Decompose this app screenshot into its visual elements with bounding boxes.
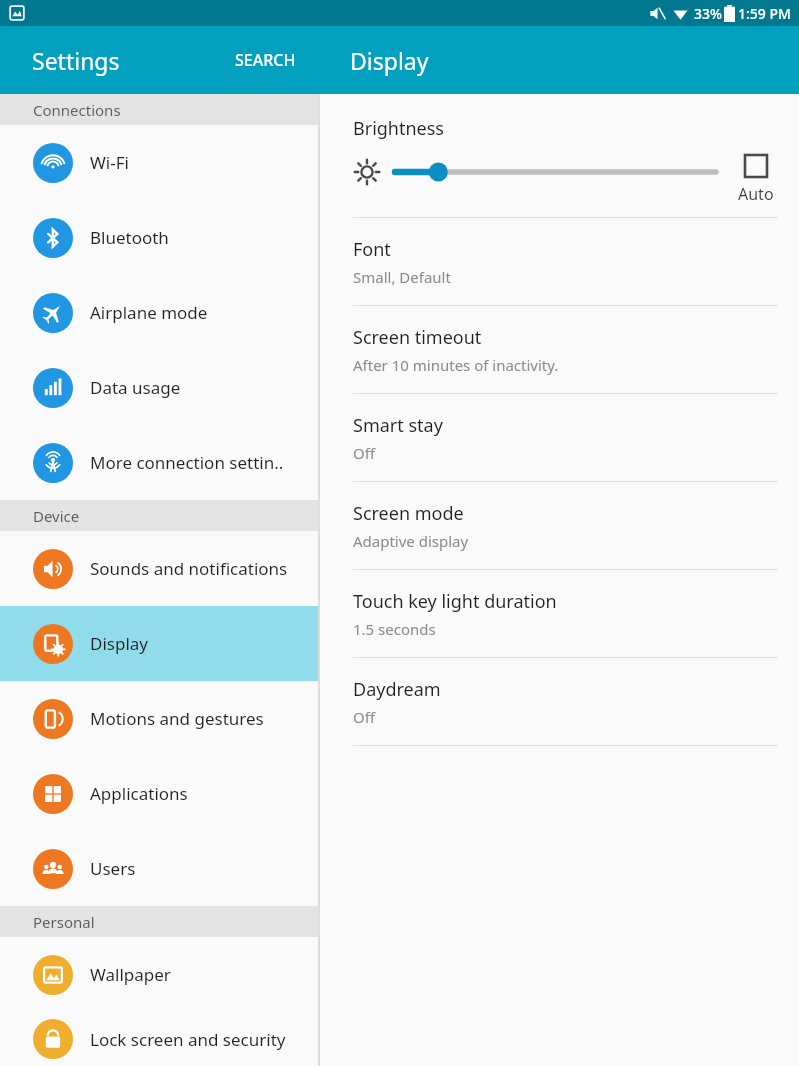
button[interactable]: Airplane mode: [0, 275, 318, 350]
staticText: SEARCH: [235, 49, 296, 71]
staticText: Bluetooth: [90, 226, 169, 249]
button[interactable]: Users: [0, 831, 318, 906]
button[interactable]: [395, 153, 716, 191]
staticText: Sounds and notifications: [90, 557, 288, 580]
button[interactable]: Motions and gestures: [0, 681, 318, 756]
staticText: 1.5 seconds: [353, 619, 436, 639]
staticText: Screen mode: [353, 501, 464, 526]
staticText: Small, Default: [353, 267, 451, 287]
staticText: Screen timeout: [353, 325, 482, 350]
staticText: Font: [353, 237, 391, 262]
staticText: Display: [90, 632, 148, 655]
staticText: After 10 minutes of inactivity.: [353, 355, 559, 375]
staticText: Adaptive display: [353, 531, 469, 551]
button[interactable]: Smart stay: [320, 394, 799, 481]
button[interactable]: Data usage: [0, 350, 318, 425]
button[interactable]: Screen timeout: [320, 306, 799, 393]
staticText: Display: [350, 45, 429, 76]
staticText: Lock screen and security: [90, 1028, 286, 1051]
staticText: Off: [353, 443, 376, 463]
button[interactable]: Daydream: [320, 658, 799, 745]
button[interactable]: Applications: [0, 756, 318, 831]
staticText: Device: [33, 506, 80, 526]
staticText: Motions and gestures: [90, 707, 264, 730]
staticText: Users: [90, 857, 136, 880]
button[interactable]: More connection settin..: [0, 425, 318, 500]
button[interactable]: Screen mode: [320, 482, 799, 569]
staticText: Wi-Fi: [90, 151, 129, 174]
staticText: Airplane mode: [90, 301, 208, 324]
staticText: Daydream: [353, 677, 441, 702]
button[interactable]: Auto: [734, 153, 778, 205]
button[interactable]: Wallpaper: [0, 937, 318, 1012]
staticText: Auto: [738, 183, 774, 205]
staticText: 33%: [694, 4, 722, 23]
staticText: Settings: [32, 45, 120, 76]
button[interactable]: SEARCH: [225, 41, 306, 79]
staticText: Applications: [90, 782, 188, 805]
staticText: Smart stay: [353, 413, 443, 438]
staticText: 1:59 PM: [738, 4, 791, 23]
button[interactable]: Wi-Fi: [0, 125, 318, 200]
button[interactable]: Display: [0, 606, 318, 681]
staticText: Wallpaper: [90, 963, 171, 986]
button[interactable]: Bluetooth: [0, 200, 318, 275]
staticText: More connection settin..: [90, 451, 284, 474]
staticText: Connections: [33, 100, 121, 120]
button[interactable]: Touch key light duration: [320, 570, 799, 657]
button[interactable]: Sounds and notifications: [0, 531, 318, 606]
staticText: Data usage: [90, 376, 181, 399]
staticText: Brightness: [353, 116, 444, 141]
staticText: Personal: [33, 912, 95, 932]
staticText: Touch key light duration: [353, 589, 557, 614]
button[interactable]: Lock screen and security: [0, 1012, 318, 1066]
button[interactable]: Font: [320, 218, 799, 305]
staticText: Off: [353, 707, 376, 727]
